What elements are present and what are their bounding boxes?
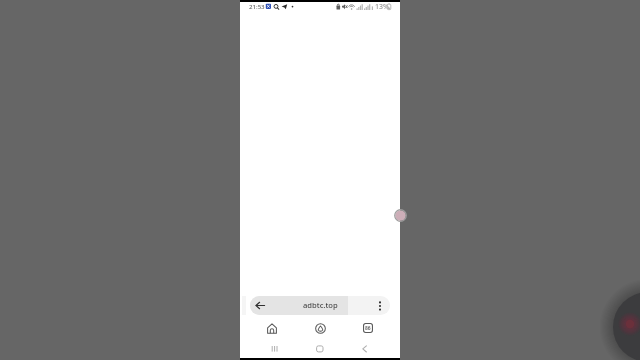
staticText: 13% xyxy=(375,2,389,12)
staticText: 21:53 xyxy=(249,2,265,10)
button[interactable]: Samsung Internet xyxy=(310,318,330,338)
button[interactable]: Home xyxy=(311,340,329,358)
staticText: adbtc.top xyxy=(303,300,338,310)
button[interactable]: Back xyxy=(356,340,374,358)
button[interactable]: Floating action xyxy=(394,209,407,222)
staticText: 86 xyxy=(365,325,371,332)
button[interactable]: Tabs: 86 xyxy=(358,318,378,338)
button[interactable]: Home xyxy=(262,318,282,338)
button[interactable]: Recents xyxy=(266,340,284,358)
button[interactable]: More options xyxy=(372,298,388,314)
button[interactable]: Back xyxy=(251,297,269,313)
